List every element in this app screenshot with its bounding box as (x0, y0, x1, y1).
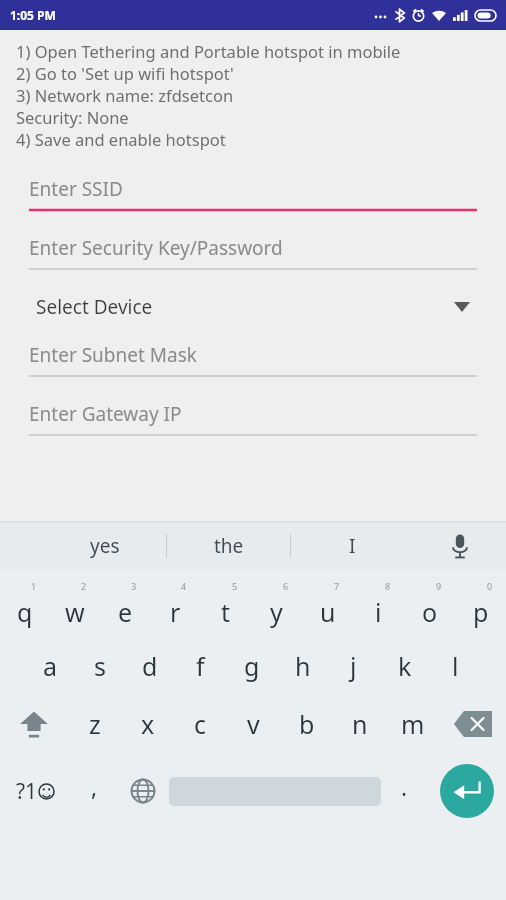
staticText: c (194, 707, 207, 741)
button[interactable]: 6 (251, 580, 302, 634)
staticText: a (43, 649, 58, 683)
button[interactable]: Change language (117, 760, 169, 822)
staticText: 5 (232, 580, 238, 592)
staticText: Enter Security Key/Password (29, 235, 283, 261)
staticText: 3) Network name: zfdsetcon (16, 84, 234, 106)
button[interactable]: f (175, 640, 226, 692)
button[interactable]: b (280, 698, 333, 750)
button[interactable]: 1 (0, 580, 50, 634)
staticText: y (270, 595, 283, 629)
staticText: 2) Go to 'Set up wifi hotspot' (16, 62, 234, 84)
staticText: 9 (436, 580, 442, 592)
staticText: v (247, 707, 260, 741)
button[interactable]: 3 (100, 580, 150, 634)
button[interactable]: h (277, 640, 328, 692)
staticText: k (398, 649, 412, 683)
button[interactable]: Shift (0, 698, 68, 750)
button[interactable]: a (25, 640, 75, 692)
button[interactable]: I (291, 522, 414, 570)
staticText: j (350, 649, 357, 683)
button[interactable]: , (71, 760, 117, 822)
button[interactable]: g (226, 640, 277, 692)
button[interactable]: n (333, 698, 386, 750)
staticText: p (473, 595, 489, 629)
staticText: the (214, 533, 244, 559)
staticText: I (349, 533, 356, 559)
button[interactable]: x (121, 698, 174, 750)
staticText: 1 (31, 580, 37, 592)
staticText: s (94, 649, 106, 683)
button[interactable]: the (167, 522, 290, 570)
staticText: r (170, 595, 181, 629)
staticText: z (89, 707, 101, 741)
staticText: x (141, 707, 155, 741)
staticText: n (352, 707, 368, 741)
button[interactable]: . (381, 760, 427, 822)
staticText: Enter Gateway IP (29, 401, 182, 427)
button[interactable]: Voice input (414, 522, 506, 570)
staticText: . (401, 771, 408, 802)
staticText: 1:05 PM (10, 7, 56, 23)
button[interactable]: Enter (427, 760, 506, 822)
button[interactable]: 2 (50, 580, 100, 634)
staticText: 6 (283, 580, 289, 592)
button[interactable]: Backspace (439, 698, 506, 750)
staticText: b (299, 707, 315, 741)
staticText: g (244, 649, 260, 683)
button[interactable]: Enter Gateway IP (29, 401, 477, 437)
staticText: Enter Subnet Mask (29, 342, 197, 368)
button[interactable]: yes (43, 522, 166, 570)
button[interactable]: ?1 (0, 760, 71, 822)
staticText: u (320, 595, 336, 629)
button[interactable]: 0 (455, 580, 506, 634)
button[interactable]: 5 (200, 580, 251, 634)
staticText: Select Device (36, 294, 454, 320)
button[interactable]: d (125, 640, 175, 692)
button[interactable]: m (386, 698, 439, 750)
staticText: d (142, 649, 158, 683)
staticText: 1) Open Tethering and Portable hotspot i… (16, 40, 401, 62)
button[interactable]: Enter Security Key/Password (29, 235, 477, 271)
button[interactable]: 4 (150, 580, 200, 634)
staticText: o (422, 595, 438, 629)
staticText: 2 (81, 580, 87, 592)
button[interactable]: v (227, 698, 280, 750)
staticText: Enter SSID (29, 176, 123, 202)
button[interactable]: l (430, 640, 481, 692)
button[interactable]: c (174, 698, 227, 750)
staticText: , (91, 771, 98, 802)
staticText: f (196, 649, 205, 683)
button[interactable]: s (75, 640, 125, 692)
button[interactable]: Select Device (36, 294, 470, 320)
staticText: m (401, 707, 425, 741)
staticText: i (375, 595, 382, 629)
button[interactable]: Enter SSID (29, 176, 477, 212)
staticText: 7 (334, 580, 340, 592)
staticText: 4 (181, 580, 187, 592)
staticText: e (118, 595, 133, 629)
button[interactable]: 7 (302, 580, 353, 634)
button[interactable]: 9 (404, 580, 455, 634)
staticText: 3 (131, 580, 137, 592)
staticText: 0 (487, 580, 493, 592)
staticText: t (221, 595, 231, 629)
button[interactable]: Enter Subnet Mask (29, 342, 477, 378)
staticText: ?1 (16, 777, 38, 806)
staticText: 8 (385, 580, 391, 592)
staticText: h (295, 649, 311, 683)
staticText: yes (90, 533, 120, 559)
staticText: w (65, 595, 85, 629)
staticText: 4) Save and enable hotspot (16, 128, 226, 150)
button[interactable]: 8 (353, 580, 404, 634)
staticText: Security: None (16, 106, 129, 128)
button[interactable]: z (68, 698, 121, 750)
staticText: q (17, 595, 33, 629)
button[interactable]: k (379, 640, 430, 692)
button[interactable]: j (328, 640, 379, 692)
button[interactable] (169, 760, 381, 822)
staticText: l (452, 649, 459, 683)
